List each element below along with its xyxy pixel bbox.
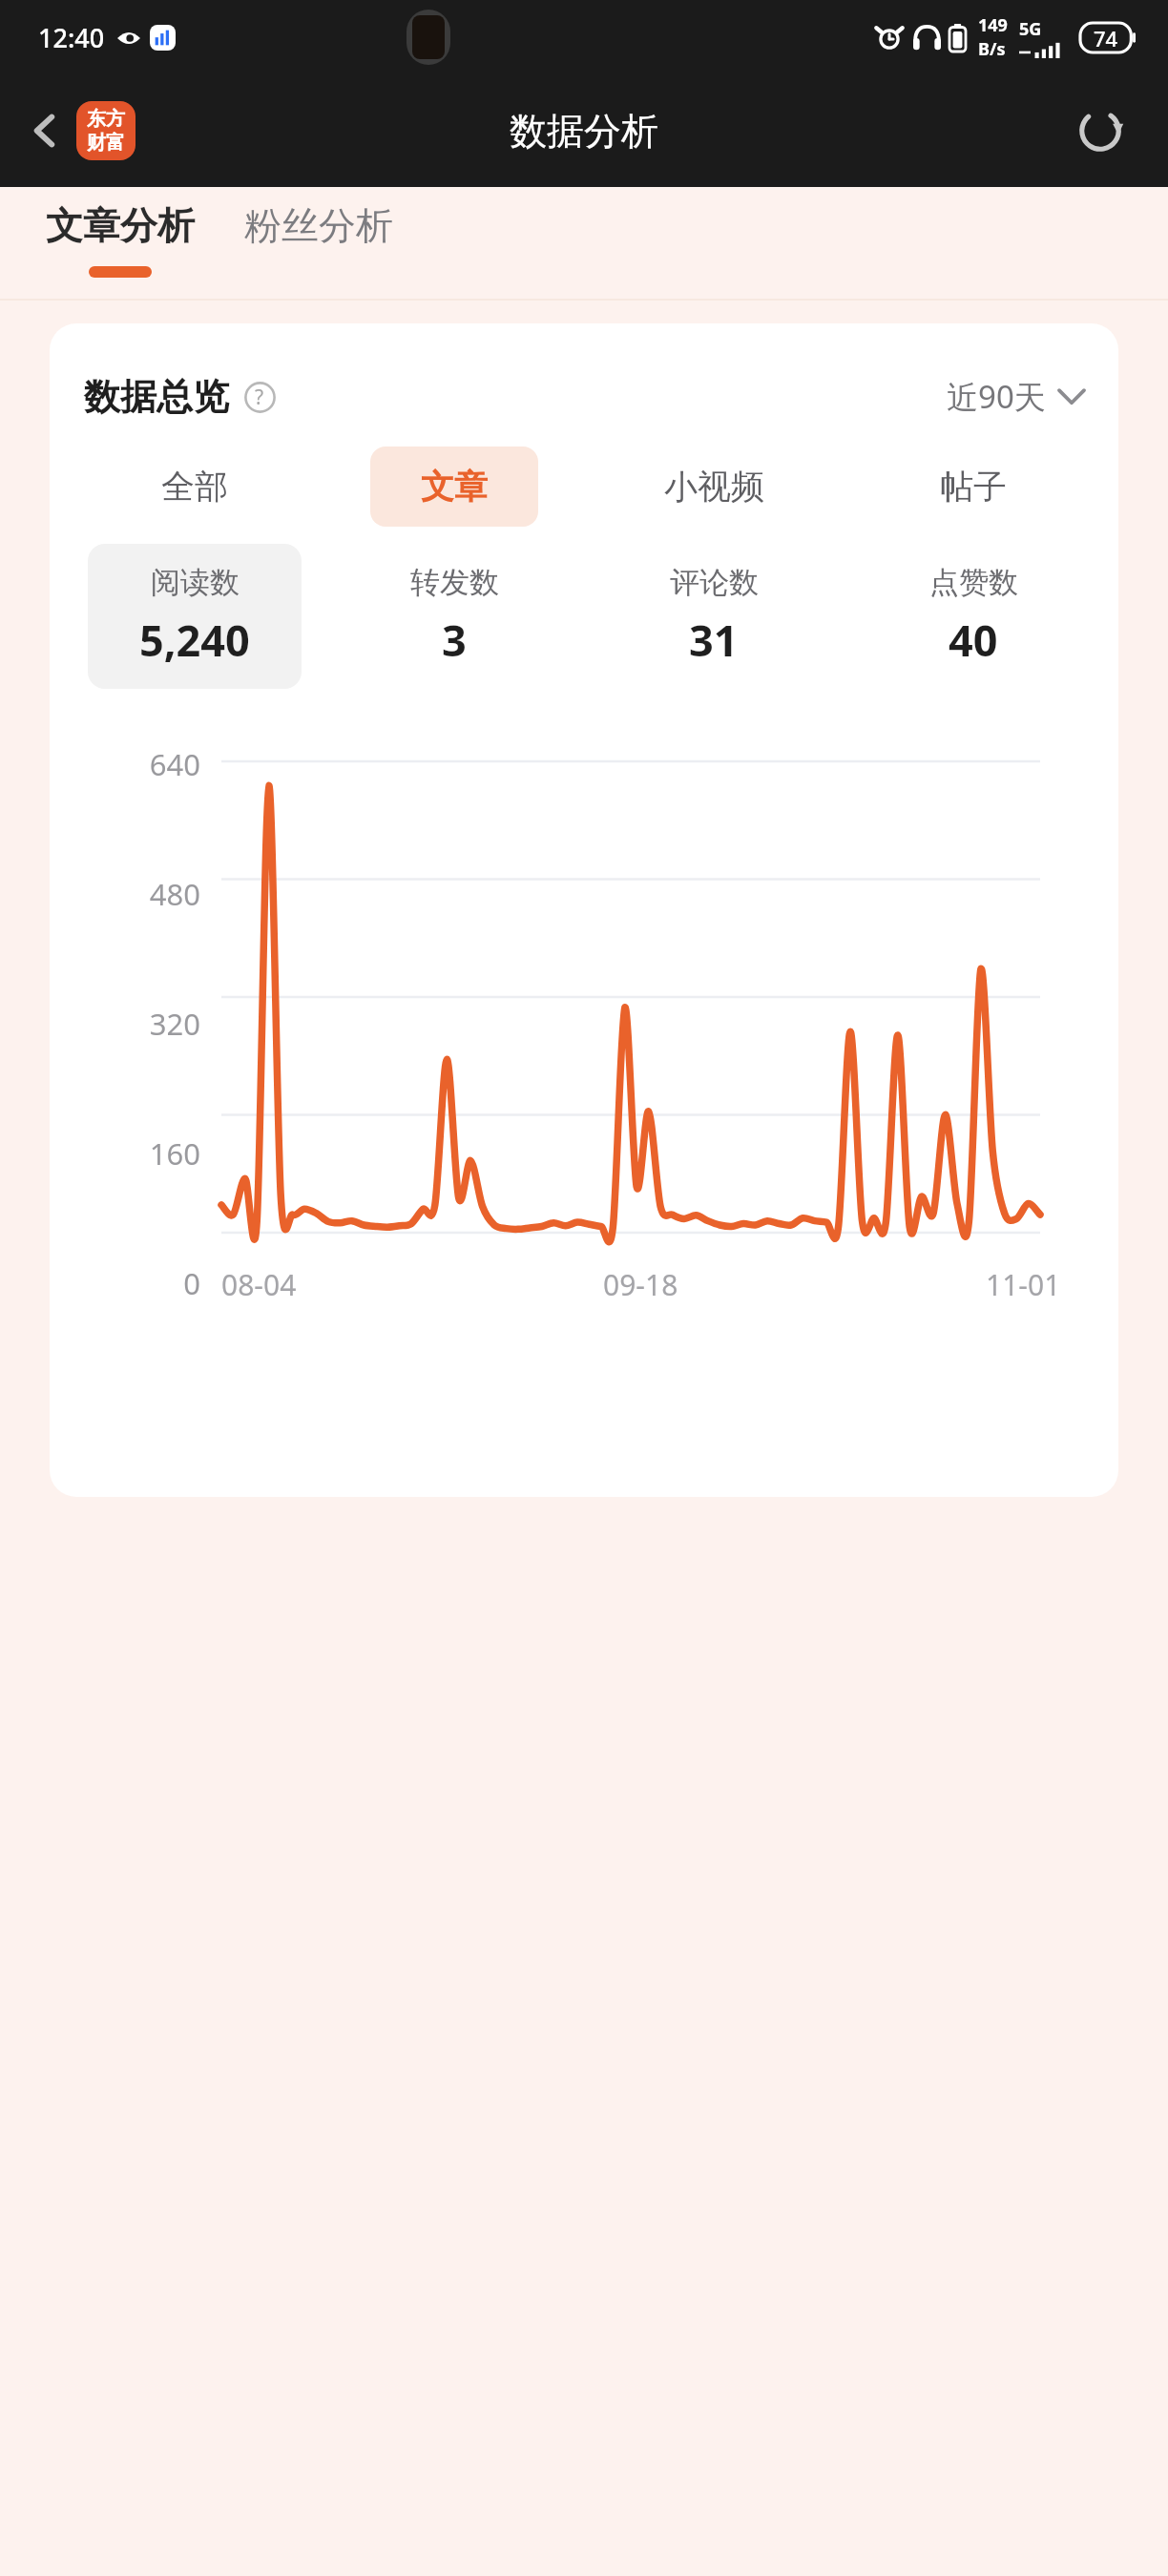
button[interactable]: 帖子	[889, 447, 1057, 527]
staticText: 全部	[161, 466, 228, 508]
button[interactable]: 文章	[370, 447, 538, 527]
staticText: 文章分析	[46, 202, 195, 249]
button[interactable]: 点赞数	[866, 544, 1080, 689]
staticText: 40	[949, 611, 998, 669]
staticText: 74	[1094, 24, 1118, 52]
staticText: 阅读数	[151, 564, 240, 601]
button[interactable]: 粉丝分析	[239, 202, 399, 249]
staticText: 09-18	[603, 1265, 678, 1304]
button[interactable]: 文章分析	[40, 202, 200, 278]
button[interactable]: 全部	[111, 447, 279, 527]
button[interactable]: 近90天	[941, 369, 1090, 424]
staticText: 帖子	[940, 466, 1007, 508]
button[interactable]: 评论数	[607, 544, 821, 689]
staticText: 评论数	[670, 564, 759, 601]
button[interactable]: 小视频	[630, 447, 798, 527]
button[interactable]: 阅读数	[88, 544, 302, 689]
staticText: 3	[442, 611, 467, 669]
staticText: 小视频	[664, 466, 764, 508]
staticText: 480	[149, 874, 200, 914]
staticText: 点赞数	[929, 564, 1018, 601]
button[interactable]: Help	[242, 380, 277, 414]
staticText: 财富	[87, 131, 125, 155]
staticText: 11-01	[986, 1265, 1061, 1304]
staticText: 文章	[421, 466, 488, 508]
staticText: 160	[149, 1133, 200, 1174]
staticText: 640	[149, 744, 200, 784]
staticText: 5G	[1019, 17, 1042, 41]
staticText: 数据分析	[510, 108, 658, 155]
staticText: 东方	[87, 107, 125, 131]
button[interactable]: 转发数	[347, 544, 561, 689]
staticText: 12:40	[38, 20, 105, 55]
staticText: ?	[255, 384, 264, 411]
staticText: 粉丝分析	[244, 202, 393, 249]
button[interactable]: 东方财富	[76, 101, 136, 160]
button[interactable]: Back	[15, 101, 74, 160]
staticText: 320	[149, 1004, 200, 1044]
staticText: 08-04	[221, 1265, 297, 1304]
staticText: 149	[978, 13, 1008, 37]
staticText: 转发数	[410, 564, 499, 601]
staticText: 近90天	[947, 375, 1046, 418]
staticText: 5,240	[139, 611, 250, 669]
staticText: 0	[183, 1263, 200, 1303]
staticText: 数据总览	[84, 374, 229, 420]
staticText: B/s	[978, 37, 1006, 61]
staticText: 31	[689, 611, 739, 669]
button[interactable]: Refresh	[1069, 99, 1132, 162]
